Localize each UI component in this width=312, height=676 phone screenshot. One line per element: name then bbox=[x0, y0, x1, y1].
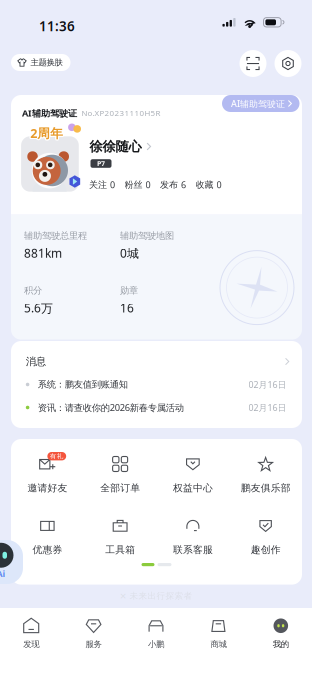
button[interactable]: 权益中心 bbox=[156, 455, 229, 494]
button[interactable]: 资讯：请查收你的2026新春专属活动 bbox=[11, 396, 302, 418]
staticText: 收藏 bbox=[195, 179, 213, 190]
staticText: 全部订单 bbox=[100, 482, 140, 494]
button[interactable]: 辅助驾驶总里程 bbox=[24, 229, 116, 261]
staticText: 勋章 bbox=[120, 285, 138, 296]
staticText: P7 bbox=[97, 159, 105, 168]
button[interactable]: AI辅助驾驶证 bbox=[222, 95, 299, 112]
staticText: 主题换肤 bbox=[30, 57, 62, 68]
staticText: 鹏友俱乐部 bbox=[241, 482, 291, 494]
staticText: AI辅助驾驶证 bbox=[22, 107, 77, 119]
staticText: 2周年 bbox=[31, 124, 64, 142]
button[interactable]: Scan bbox=[239, 50, 266, 77]
button[interactable]: 优惠券 bbox=[11, 517, 84, 556]
button[interactable]: 有礼 bbox=[11, 455, 84, 494]
staticText: 消息 bbox=[26, 355, 46, 368]
button[interactable]: 发现 bbox=[0, 617, 62, 650]
staticText: 服务 bbox=[86, 639, 102, 650]
staticText: 2周年 bbox=[29, 125, 62, 143]
button[interactable]: 积分 bbox=[24, 284, 116, 315]
staticText: 联系客服 bbox=[173, 543, 213, 556]
button[interactable]: 鹏友俱乐部 bbox=[229, 455, 302, 494]
staticText: 2周年 bbox=[29, 124, 62, 142]
button[interactable]: 收藏 bbox=[195, 179, 221, 191]
staticText: 发现 bbox=[23, 639, 39, 650]
staticText: 2周年 bbox=[31, 124, 64, 141]
staticText: 2周年 bbox=[30, 126, 63, 143]
staticText: ✕ 未来出行探索者 bbox=[119, 591, 192, 601]
staticText: 0 bbox=[145, 179, 150, 191]
button[interactable]: 勋章 bbox=[120, 284, 212, 315]
staticText: 有礼 bbox=[50, 452, 64, 460]
button[interactable]: 我的 bbox=[250, 617, 312, 650]
staticText: 辅助驾驶总里程 bbox=[24, 230, 87, 241]
staticText: 小鹏 bbox=[148, 639, 164, 650]
staticText: 02月16日 bbox=[248, 378, 286, 390]
staticText: 粉丝 bbox=[124, 179, 142, 190]
staticText: 权益中心 bbox=[173, 482, 213, 494]
staticText: AI辅助驾驶证 bbox=[231, 97, 285, 110]
button[interactable]: 联系客服 bbox=[156, 517, 229, 556]
staticText: Ai bbox=[0, 568, 5, 580]
button[interactable]: 主题换肤 bbox=[11, 54, 70, 71]
staticText: 0 bbox=[110, 179, 115, 191]
button[interactable]: 关注 bbox=[89, 179, 115, 191]
button[interactable]: 消息 bbox=[11, 346, 302, 376]
button[interactable]: Settings bbox=[274, 50, 301, 77]
staticText: 2周年 bbox=[29, 124, 62, 141]
staticText: 881km bbox=[24, 245, 62, 261]
staticText: 2周年 bbox=[30, 123, 63, 141]
staticText: 5.6万 bbox=[24, 300, 53, 316]
staticText: 系统：鹏友值到账通知 bbox=[38, 379, 128, 390]
button[interactable]: 粉丝 bbox=[124, 179, 150, 191]
staticText: 0 bbox=[216, 179, 221, 191]
button[interactable]: AI assistant bbox=[0, 540, 23, 584]
button[interactable]: 徐徐随心 bbox=[89, 138, 153, 155]
button[interactable]: 发布 bbox=[160, 179, 186, 191]
staticText: No.XP20231110H5R bbox=[81, 108, 160, 118]
staticText: 资讯：请查收你的2026新春专属活动 bbox=[38, 401, 184, 414]
button[interactable]: 小鹏 bbox=[125, 617, 187, 650]
button[interactable]: 全部订单 bbox=[84, 455, 157, 494]
staticText: 11:36 bbox=[39, 17, 75, 35]
button[interactable]: 辅助驾驶地图 bbox=[120, 229, 212, 261]
staticText: 商城 bbox=[210, 639, 226, 650]
staticText: 工具箱 bbox=[105, 543, 135, 556]
staticText: 积分 bbox=[24, 285, 42, 296]
staticText: 我的 bbox=[273, 639, 289, 650]
staticText: 0城 bbox=[120, 245, 139, 261]
button[interactable]: 趣创作 bbox=[229, 517, 302, 556]
staticText: 辅助驾驶地图 bbox=[120, 230, 174, 241]
staticText: 优惠券 bbox=[32, 543, 62, 556]
staticText: 关注 bbox=[89, 179, 107, 190]
staticText: 趣创作 bbox=[251, 543, 281, 556]
staticText: 2周年 bbox=[31, 125, 64, 143]
button[interactable]: 商城 bbox=[187, 617, 250, 650]
staticText: 邀请好友 bbox=[27, 482, 67, 494]
staticText: 02月16日 bbox=[248, 401, 286, 413]
staticText: 发布 bbox=[160, 179, 178, 190]
staticText: 徐徐随心 bbox=[89, 138, 141, 155]
staticText: 6 bbox=[181, 179, 186, 191]
staticText: 2周年 bbox=[30, 124, 63, 142]
button[interactable]: 服务 bbox=[62, 617, 125, 650]
staticText: 16 bbox=[120, 300, 134, 316]
button[interactable]: 系统：鹏友值到账通知 bbox=[11, 373, 302, 395]
button[interactable]: 工具箱 bbox=[84, 517, 157, 556]
